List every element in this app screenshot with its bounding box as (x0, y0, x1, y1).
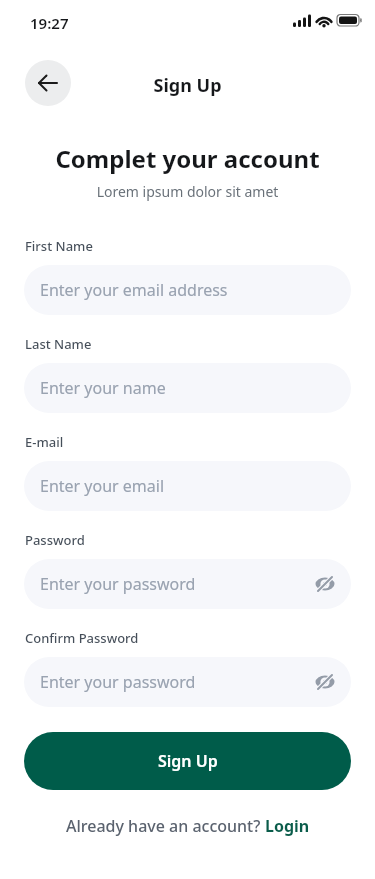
staticText: Enter your email (40, 475, 165, 497)
button[interactable]: Enter your password (24, 559, 351, 609)
staticText: Lorem ipsum dolor sit amet (0, 182, 375, 201)
staticText: E-mail (25, 433, 64, 451)
staticText: Confirm Password (25, 629, 139, 647)
staticText: Enter your password (40, 573, 196, 595)
button[interactable]: Enter your name (24, 363, 351, 413)
button[interactable]: Enter your password (24, 657, 351, 707)
staticText: Enter your password (40, 671, 196, 693)
button[interactable]: Sign Up (24, 732, 351, 790)
staticText: Already have an account? (66, 815, 265, 837)
staticText: Enter your email address (40, 279, 228, 301)
button[interactable]: Enter your email (24, 461, 351, 511)
button[interactable]: Enter your email address (24, 265, 351, 315)
staticText: Sign Up (0, 73, 375, 98)
staticText: Password (25, 531, 85, 549)
staticText: Enter your name (40, 377, 166, 399)
staticText: First Name (25, 237, 93, 255)
button[interactable]: Login (265, 815, 310, 837)
button[interactable] (25, 60, 71, 106)
staticText: Complet your account (0, 142, 375, 175)
staticText: Last Name (25, 335, 92, 353)
staticText: 19:27 (30, 13, 69, 33)
staticText: Sign Up (158, 750, 218, 772)
